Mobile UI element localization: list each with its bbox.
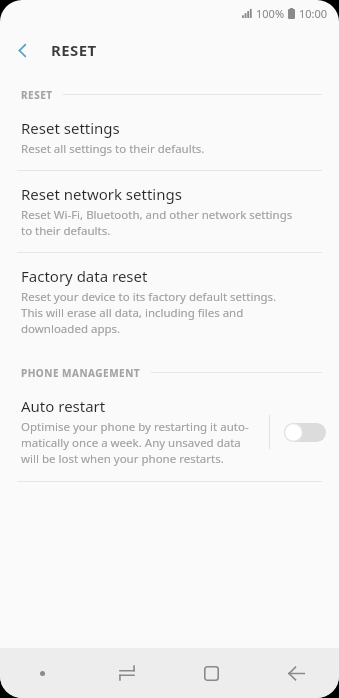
staticText: Reset all settings to their defaults. <box>21 141 205 157</box>
button[interactable]: Home <box>169 648 254 698</box>
staticText: 100% <box>256 6 285 21</box>
staticText: 10:00 <box>299 6 328 21</box>
button[interactable]: Keyboard <box>0 648 84 698</box>
staticText: Reset settings <box>21 118 120 138</box>
staticText: Reset your device to its factory default… <box>21 289 277 305</box>
staticText: downloaded apps. <box>21 321 121 337</box>
staticText: Optimise your phone by restarting it aut… <box>21 419 249 435</box>
staticText: RESET <box>21 88 53 102</box>
button[interactable]: Factory data reset <box>0 253 339 353</box>
button[interactable]: Auto restart <box>0 383 339 481</box>
button[interactable]: Auto restart <box>270 402 339 462</box>
staticText: Factory data reset <box>21 266 148 286</box>
button[interactable]: Back <box>254 648 339 698</box>
staticText: matically once a week. Any unsaved data <box>21 435 241 451</box>
staticText: RESET <box>51 40 97 60</box>
staticText: will be lost when your phone restarts. <box>21 451 224 467</box>
button[interactable]: Recents <box>84 648 169 698</box>
button[interactable]: Reset network settings <box>0 171 339 252</box>
staticText: This will erase all data, including file… <box>21 305 244 321</box>
button[interactable]: Reset settings <box>0 105 339 170</box>
staticText: Auto restart <box>21 396 106 416</box>
staticText: Reset network settings <box>21 184 182 204</box>
staticText: Reset Wi-Fi, Bluetooth, and other networ… <box>21 207 293 223</box>
staticText: PHONE MANAGEMENT <box>21 366 141 380</box>
staticText: to their defaults. <box>21 223 111 239</box>
button[interactable]: Back <box>0 28 44 72</box>
